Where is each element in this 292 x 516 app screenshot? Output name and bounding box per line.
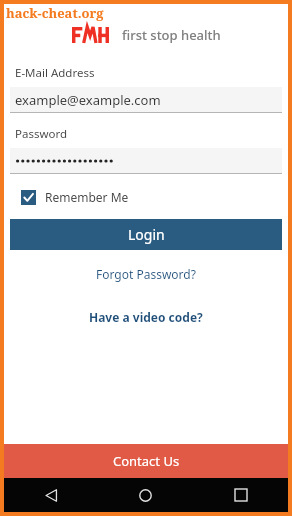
staticText: hack-cheat.org (6, 4, 104, 22)
button[interactable] (10, 148, 282, 174)
staticText: Remember Me (45, 189, 129, 205)
button[interactable]: Contact Us (4, 444, 288, 478)
button[interactable]: Home (98, 478, 193, 512)
staticText: Password (15, 126, 68, 142)
button[interactable]: Forgot Password? (4, 266, 288, 282)
staticText: first stop health (122, 26, 221, 44)
staticText: Forgot Password? (96, 266, 196, 282)
button[interactable]: example@example.com (10, 87, 282, 113)
staticText: Have a video code? (89, 309, 203, 325)
button[interactable]: Recents (193, 478, 288, 512)
button[interactable]: Back (4, 478, 98, 512)
button[interactable]: Remember Me (21, 189, 129, 205)
staticText: Contact Us (113, 452, 180, 470)
staticText: E-Mail Address (15, 65, 95, 81)
staticText: Login (128, 225, 165, 244)
button[interactable]: Login (10, 219, 282, 250)
staticText: example@example.com (15, 91, 161, 109)
button[interactable]: Have a video code? (4, 309, 288, 325)
